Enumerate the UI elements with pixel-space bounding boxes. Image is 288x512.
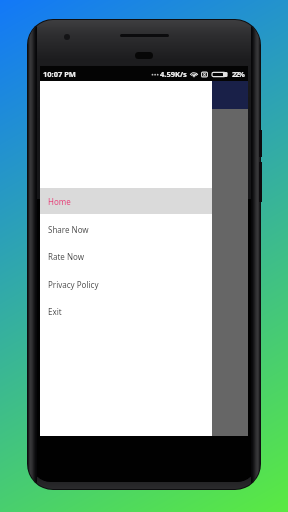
button[interactable]: Share Now (40, 215, 212, 243)
button[interactable]: Privacy Policy (40, 270, 212, 298)
staticText: 4.59K/s (160, 69, 187, 79)
staticText: Home (48, 196, 71, 207)
staticText: 10:07 PM (43, 69, 76, 79)
button[interactable]: Rate Now (40, 242, 212, 270)
staticText: 22% (232, 69, 244, 79)
button[interactable]: Exit (40, 297, 212, 325)
staticText: Share Now (48, 224, 89, 235)
staticText: Rate Now (48, 251, 84, 262)
staticText: Exit (48, 306, 62, 317)
button[interactable] (40, 81, 248, 436)
button[interactable]: Home (40, 187, 212, 215)
staticText: Privacy Policy (48, 279, 99, 290)
